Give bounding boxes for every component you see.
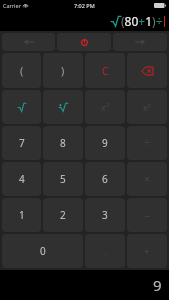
button[interactable]: ( (2, 53, 41, 88)
staticText: × (144, 172, 150, 186)
button[interactable]: 5 (43, 162, 83, 196)
staticText: 9 (153, 275, 162, 295)
staticText: 3 (102, 208, 108, 222)
staticText: 5 (60, 172, 66, 186)
button[interactable]: 2 (43, 198, 83, 232)
staticText: (80+1)÷ (121, 13, 163, 29)
button[interactable]: Backspace (127, 53, 167, 88)
staticText: 4 (19, 172, 25, 186)
staticText: ÷ (144, 136, 150, 150)
button[interactable]: 7 (2, 126, 41, 160)
staticText: C (102, 64, 109, 78)
button[interactable]: Square root (2, 90, 41, 124)
staticText: ) (61, 63, 65, 78)
button[interactable]: 0 (2, 234, 83, 268)
staticText: xy (143, 101, 151, 113)
staticText: 9 (102, 136, 108, 150)
staticText: 7:02 PM (74, 2, 95, 9)
button[interactable]: 9 (85, 126, 125, 160)
staticText: − (144, 208, 151, 223)
button[interactable]: 4 (2, 162, 41, 196)
staticText: 7 (19, 136, 25, 150)
staticText: ( (20, 63, 24, 78)
staticText: 8 (60, 136, 66, 150)
staticText: 1 (19, 208, 25, 222)
button[interactable]: Cube root (43, 90, 83, 124)
button[interactable]: ) (43, 53, 83, 88)
button[interactable]: C (85, 53, 125, 88)
staticText: Carrier (3, 2, 21, 9)
staticText: 2 (60, 208, 66, 222)
staticText: 0 (40, 244, 46, 258)
staticText: x2 (101, 101, 110, 113)
staticText: + (144, 244, 150, 258)
button[interactable]: 1 (2, 198, 41, 232)
button[interactable]: 3 (85, 198, 125, 232)
button[interactable]: 8 (43, 126, 83, 160)
button[interactable]: Power (57, 33, 111, 51)
staticText: 6 (102, 172, 108, 186)
button[interactable]: 6 (85, 162, 125, 196)
